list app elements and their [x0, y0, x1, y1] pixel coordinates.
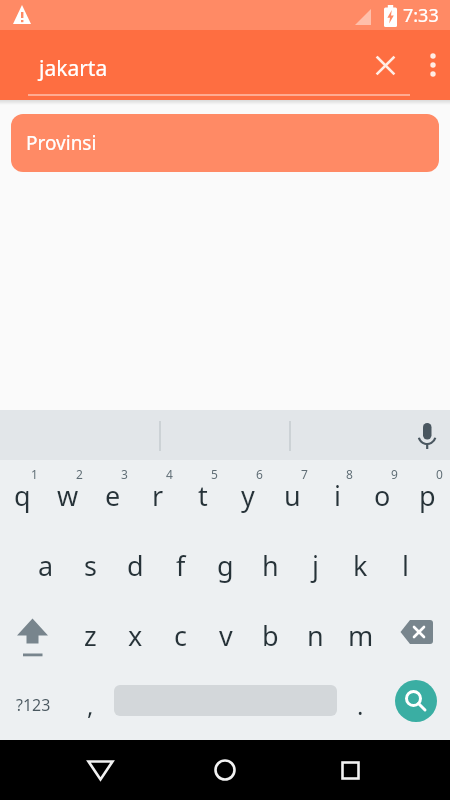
button[interactable]: j: [293, 530, 338, 600]
staticText: 7: [301, 466, 308, 482]
staticText: 5: [211, 466, 218, 482]
button[interactable]: i: [315, 460, 360, 530]
button[interactable]: b: [248, 600, 293, 670]
button[interactable]: f: [158, 530, 203, 600]
button[interactable]: [0, 600, 68, 670]
button[interactable]: c: [158, 600, 203, 670]
staticText: b: [262, 617, 279, 654]
staticText: 2: [76, 466, 83, 482]
staticText: c: [174, 617, 187, 654]
button[interactable]: [190, 740, 260, 800]
button[interactable]: k: [338, 530, 383, 600]
button[interactable]: u: [270, 460, 315, 530]
staticText: r: [152, 477, 164, 514]
staticText: d: [127, 547, 144, 584]
staticText: j: [312, 547, 319, 584]
staticText: h: [262, 547, 279, 584]
button[interactable]: v: [203, 600, 248, 670]
button[interactable]: [400, 410, 450, 460]
staticText: a: [38, 547, 54, 584]
button[interactable]: [315, 740, 385, 800]
staticText: ?123: [16, 694, 51, 716]
staticText: x: [128, 617, 143, 654]
staticText: z: [84, 617, 97, 654]
button[interactable]: r: [135, 460, 180, 530]
button[interactable]: y: [225, 460, 270, 530]
button[interactable]: l: [383, 530, 427, 600]
staticText: w: [57, 477, 79, 514]
staticText: g: [217, 547, 234, 584]
button[interactable]: [383, 600, 450, 670]
button[interactable]: o: [360, 460, 405, 530]
staticText: 8: [346, 466, 353, 482]
button[interactable]: [65, 740, 135, 800]
button[interactable]: [422, 45, 444, 85]
staticText: p: [419, 477, 436, 514]
staticText: f: [176, 547, 186, 584]
button[interactable]: d: [113, 530, 158, 600]
button[interactable]: ?123: [0, 670, 66, 740]
button[interactable]: m: [338, 600, 383, 670]
button[interactable]: [367, 47, 403, 83]
staticText: 3: [121, 466, 128, 482]
button[interactable]: .: [338, 670, 383, 740]
staticText: l: [402, 547, 409, 584]
staticText: 0: [436, 466, 443, 482]
staticText: v: [219, 617, 233, 654]
button[interactable]: x: [113, 600, 158, 670]
staticText: Provinsi: [26, 130, 97, 156]
staticText: m: [348, 617, 374, 654]
staticText: k: [353, 547, 368, 584]
staticText: q: [14, 477, 31, 514]
button[interactable]: [395, 680, 437, 722]
button[interactable]: p: [405, 460, 450, 530]
staticText: e: [105, 477, 121, 514]
staticText: n: [307, 617, 324, 654]
staticText: ,: [87, 689, 94, 722]
button[interactable]: a: [23, 530, 68, 600]
staticText: 6: [256, 466, 263, 482]
staticText: .: [357, 689, 364, 722]
staticText: 1: [31, 466, 38, 482]
button[interactable]: w: [45, 460, 90, 530]
button[interactable]: e: [90, 460, 135, 530]
button[interactable]: h: [248, 530, 293, 600]
staticText: y: [241, 477, 255, 514]
button[interactable]: Provinsi: [11, 114, 439, 172]
button[interactable]: q: [0, 460, 45, 530]
staticText: t: [198, 477, 208, 514]
staticText: i: [334, 477, 341, 514]
staticText: u: [284, 477, 301, 514]
button[interactable]: ,: [68, 670, 113, 740]
button[interactable]: n: [293, 600, 338, 670]
staticText: jakarta: [39, 54, 108, 83]
staticText: 7:33: [403, 3, 439, 28]
button[interactable]: t: [180, 460, 225, 530]
button[interactable]: z: [68, 600, 113, 670]
staticText: o: [374, 477, 391, 514]
staticText: 9: [391, 466, 398, 482]
button[interactable]: s: [68, 530, 113, 600]
staticText: 4: [166, 466, 173, 482]
button[interactable]: g: [203, 530, 248, 600]
staticText: s: [84, 547, 97, 584]
